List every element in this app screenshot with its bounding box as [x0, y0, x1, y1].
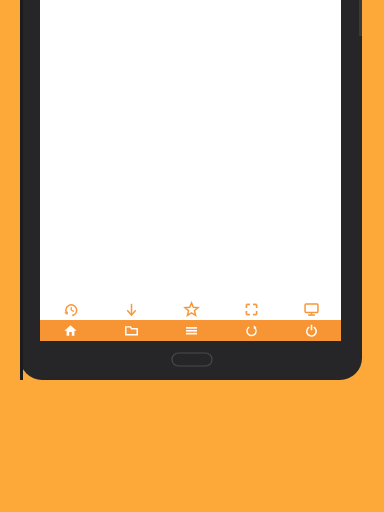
button[interactable]: Power	[281, 320, 341, 341]
button[interactable]: Refresh	[221, 320, 281, 341]
button[interactable]: Fullscreen	[221, 298, 281, 320]
button[interactable]: Folder	[101, 320, 161, 341]
button[interactable]: Home	[40, 320, 101, 341]
button[interactable]: Favorite	[161, 298, 221, 320]
button[interactable]: Menu	[161, 320, 221, 341]
button[interactable]: Download	[101, 298, 161, 320]
button[interactable]: History	[40, 298, 101, 320]
button[interactable]: Home button	[171, 352, 213, 367]
button[interactable]: Cast to screen	[281, 298, 341, 320]
